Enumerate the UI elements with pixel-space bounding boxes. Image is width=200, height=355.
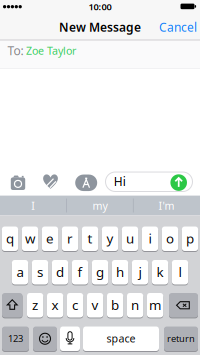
button[interactable]: Digital Touch bbox=[42, 173, 58, 189]
button[interactable]: return bbox=[164, 326, 198, 352]
button[interactable]: Emoji bbox=[33, 326, 57, 352]
button[interactable]: a bbox=[12, 260, 28, 285]
staticText: j bbox=[138, 263, 141, 281]
staticText: d bbox=[56, 263, 64, 281]
staticText: h bbox=[116, 263, 124, 281]
staticText: b bbox=[111, 296, 119, 314]
button[interactable]: Camera bbox=[10, 175, 26, 191]
button[interactable]: h bbox=[112, 260, 128, 285]
staticText: t bbox=[87, 229, 92, 247]
staticText: k bbox=[156, 263, 163, 281]
staticText: o bbox=[166, 229, 174, 247]
staticText: p bbox=[186, 229, 194, 247]
staticText: c bbox=[72, 296, 78, 314]
staticText: my bbox=[92, 198, 107, 213]
staticText: u bbox=[126, 229, 134, 247]
staticText: l bbox=[178, 263, 181, 281]
button[interactable]: Message bbox=[105, 171, 193, 192]
staticText: g bbox=[96, 263, 104, 281]
button[interactable]: I bbox=[3, 196, 63, 215]
staticText: x bbox=[52, 296, 59, 314]
button[interactable]: j bbox=[132, 260, 148, 285]
button[interactable]: s bbox=[32, 260, 48, 285]
button[interactable]: z bbox=[27, 293, 43, 318]
staticText: I bbox=[31, 198, 35, 213]
button[interactable]: v bbox=[87, 293, 103, 318]
button[interactable]: Apps bbox=[74, 174, 98, 192]
button[interactable]: l bbox=[172, 260, 188, 285]
staticText: space bbox=[106, 331, 135, 345]
staticText: v bbox=[92, 296, 99, 314]
staticText: e bbox=[46, 229, 54, 247]
button[interactable]: d bbox=[52, 260, 68, 285]
button[interactable]: Shift bbox=[2, 293, 22, 318]
button[interactable]: c bbox=[67, 293, 83, 318]
button[interactable]: my bbox=[70, 196, 130, 215]
button[interactable]: To: Zoe Taylor bbox=[0, 40, 200, 68]
staticText: New Message bbox=[59, 19, 141, 35]
button[interactable]: k bbox=[152, 260, 168, 285]
button[interactable]: space bbox=[83, 326, 159, 352]
button[interactable]: p bbox=[182, 226, 198, 252]
button[interactable]: t bbox=[82, 226, 98, 252]
staticText: return bbox=[167, 332, 195, 344]
button[interactable]: w bbox=[22, 226, 38, 252]
button[interactable]: Dictate bbox=[60, 326, 80, 352]
staticText: Cancel bbox=[159, 19, 197, 35]
button[interactable]: m bbox=[147, 293, 163, 318]
button[interactable]: x bbox=[47, 293, 63, 318]
button[interactable]: e bbox=[42, 226, 58, 252]
staticText: f bbox=[77, 263, 82, 281]
button[interactable]: i bbox=[142, 226, 158, 252]
button[interactable]: q bbox=[2, 226, 18, 252]
staticText: I'm bbox=[159, 198, 175, 213]
staticText: r bbox=[67, 229, 73, 247]
button[interactable]: f bbox=[72, 260, 88, 285]
button[interactable]: r bbox=[62, 226, 78, 252]
staticText: w bbox=[25, 229, 35, 247]
button[interactable]: o bbox=[162, 226, 178, 252]
staticText: i bbox=[148, 229, 151, 247]
button[interactable]: u bbox=[122, 226, 138, 252]
staticText: Zoe Taylor bbox=[26, 44, 76, 58]
staticText: q bbox=[6, 229, 14, 247]
staticText: s bbox=[37, 263, 43, 281]
button[interactable]: Cancel bbox=[159, 19, 197, 35]
staticText: 10:00 bbox=[88, 0, 111, 13]
button[interactable]: I'm bbox=[137, 196, 197, 215]
button[interactable]: g bbox=[92, 260, 108, 285]
staticText: y bbox=[106, 229, 113, 247]
staticText: z bbox=[32, 296, 38, 314]
staticText: Hi bbox=[114, 173, 126, 189]
staticText: To: bbox=[7, 42, 23, 58]
button[interactable]: 123 bbox=[2, 326, 29, 352]
staticText: n bbox=[131, 296, 139, 314]
button[interactable]: y bbox=[102, 226, 118, 252]
button[interactable]: b bbox=[107, 293, 123, 318]
button[interactable]: n bbox=[127, 293, 143, 318]
staticText: 123 bbox=[8, 332, 23, 344]
button[interactable]: Send bbox=[170, 174, 187, 191]
button[interactable]: Delete bbox=[169, 293, 198, 318]
staticText: a bbox=[16, 263, 23, 281]
staticText: m bbox=[149, 296, 161, 314]
